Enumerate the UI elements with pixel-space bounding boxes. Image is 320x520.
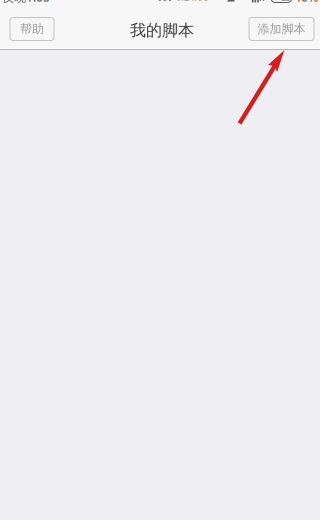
button[interactable]: 添加脚本	[249, 17, 314, 40]
staticText: x	[259, 0, 265, 4]
button[interactable]: 帮助	[10, 17, 54, 40]
staticText: 夜晚1:05	[2, 0, 50, 5]
staticText: 帮助	[20, 22, 44, 36]
staticText: 我的脚本	[130, 21, 194, 40]
staticText: 40%	[294, 0, 318, 5]
staticText: 0.24K/s	[176, 0, 209, 3]
staticText: 添加脚本	[257, 22, 305, 36]
